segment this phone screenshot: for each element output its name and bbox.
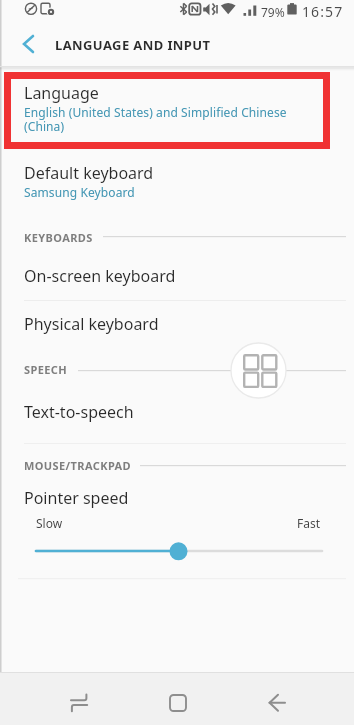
button[interactable] <box>247 678 307 725</box>
button[interactable]: Default keyboard <box>0 149 354 215</box>
staticText: Language <box>24 82 99 104</box>
staticText: 79% <box>261 4 285 20</box>
button[interactable]: Physical keyboard <box>0 301 354 348</box>
staticText: (China) <box>24 118 65 134</box>
staticText: Default keyboard <box>24 162 154 184</box>
button[interactable]: Text-to-speech <box>0 388 354 443</box>
staticText: On-screen keyboard <box>24 265 176 287</box>
button[interactable] <box>148 678 208 725</box>
button[interactable]: Pointer speed <box>0 475 354 578</box>
button[interactable] <box>8 30 46 62</box>
staticText: LANGUAGE AND INPUT <box>55 36 211 54</box>
staticText: Samsung Keyboard <box>24 184 135 200</box>
staticText: Slow <box>36 515 63 531</box>
staticText: MOUSE/TRACKPAD <box>24 458 132 473</box>
button[interactable]: On-screen keyboard <box>0 252 354 300</box>
staticText: Fast <box>297 515 321 531</box>
staticText: KEYBOARDS <box>24 230 93 245</box>
staticText: SPEECH <box>24 362 68 377</box>
button[interactable]: Language <box>0 67 354 149</box>
staticText: Physical keyboard <box>24 313 159 335</box>
staticText: Pointer speed <box>24 487 129 509</box>
button[interactable] <box>49 678 109 725</box>
staticText: English (United States) and Simplified C… <box>24 104 287 120</box>
staticText: 16:57 <box>302 2 344 21</box>
staticText: Text-to-speech <box>24 401 134 423</box>
